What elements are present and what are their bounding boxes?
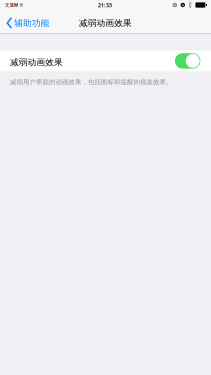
staticText: 减弱动画效果 [10, 57, 63, 68]
button[interactable]: 辅助功能 [0, 12, 56, 34]
staticText: 减弱用户界面的动画效果，包括图标和提醒的视差效果。 [10, 78, 172, 86]
button[interactable]: 减弱动画效果 [0, 50, 211, 71]
staticText: 21:33 [98, 1, 112, 9]
staticText: 无 SIM 卡 [5, 2, 23, 8]
staticText: 减弱动画效果 [79, 17, 132, 28]
staticText: 辅助功能 [14, 17, 50, 28]
